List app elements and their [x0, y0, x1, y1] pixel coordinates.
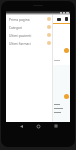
- button[interactable]: Ultimi farmaci: [6, 39, 52, 47]
- button[interactable]: Photos: [57, 18, 61, 21]
- staticText: Ultimi farmaci: [9, 41, 47, 45]
- button[interactable]: Categori: [6, 23, 52, 31]
- button[interactable]: Recents: [53, 123, 59, 129]
- button[interactable]: Back: [18, 123, 24, 129]
- button[interactable]: Profile: [65, 17, 68, 21]
- button[interactable]: Add: [64, 48, 69, 53]
- button[interactable]: Home: [35, 123, 41, 129]
- button[interactable]: Add: [64, 94, 69, 99]
- staticText: Categori: [9, 25, 47, 29]
- staticText: Prima pagina: [9, 17, 47, 21]
- button[interactable]: Prima pagina: [6, 15, 52, 23]
- staticText: Ultimi pazienti: [9, 33, 47, 37]
- button[interactable]: Ultimi pazienti: [6, 31, 52, 39]
